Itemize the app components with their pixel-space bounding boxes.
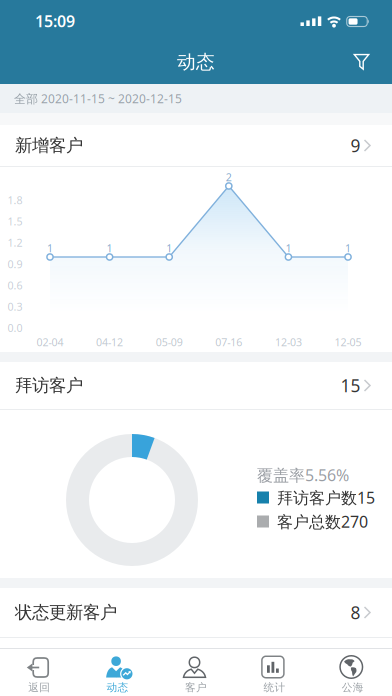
staticText: 1.2 [7, 236, 22, 250]
staticText: 04-12 [96, 335, 123, 349]
staticText: 覆盖率5.56% [257, 464, 349, 486]
staticText: 0.3 [7, 300, 22, 314]
staticText: 1.5 [7, 214, 22, 228]
staticText: 12-03 [275, 335, 302, 349]
button[interactable]: 统计 [235, 649, 314, 696]
button[interactable]: 返回 [0, 649, 78, 696]
staticText: 客户 [185, 681, 207, 694]
staticText: 拜访客户数15 [277, 487, 375, 508]
staticText: 1 [166, 241, 172, 255]
staticText: 拜访客户 [15, 375, 83, 396]
staticText: 07-16 [215, 335, 242, 349]
staticText: 2 [226, 170, 232, 184]
button[interactable]: 拜访客户 [0, 362, 392, 409]
staticText: 1.8 [7, 193, 22, 207]
staticText: 全部 2020-11-15 ~ 2020-12-15 [14, 90, 182, 106]
staticText: 05-09 [156, 335, 183, 349]
staticText: 0.0 [7, 321, 22, 335]
button[interactable]: 动态 [78, 649, 157, 696]
staticText: 12-05 [334, 335, 361, 349]
staticText: 1 [285, 241, 291, 255]
button[interactable]: 新增客户 [0, 125, 392, 166]
staticText: 客户总数270 [277, 511, 368, 532]
button[interactable]: 状态更新客户 [0, 588, 392, 637]
button[interactable]: 客户 [157, 649, 235, 696]
staticText: 动态 [107, 681, 129, 694]
staticText: 1 [345, 241, 351, 255]
button[interactable]: 公海 [314, 649, 392, 696]
staticText: 状态更新客户 [15, 602, 117, 623]
staticText: 8 [350, 601, 360, 624]
staticText: 公海 [342, 681, 364, 694]
staticText: 返回 [28, 681, 50, 694]
staticText: 新增客户 [15, 135, 83, 156]
staticText: 9 [350, 134, 360, 157]
staticText: 动态 [177, 50, 215, 73]
staticText: 15 [340, 374, 360, 397]
staticText: 1 [107, 241, 113, 255]
button[interactable]: Filter [347, 48, 375, 76]
staticText: 0.9 [7, 257, 22, 271]
staticText: 统计 [263, 681, 285, 694]
button[interactable]: 全部 2020-11-15 ~ 2020-12-15 [0, 84, 392, 113]
staticText: 15:09 [35, 10, 75, 32]
staticText: 02-04 [36, 335, 63, 349]
staticText: 1 [47, 241, 53, 255]
staticText: 0.6 [7, 278, 22, 292]
